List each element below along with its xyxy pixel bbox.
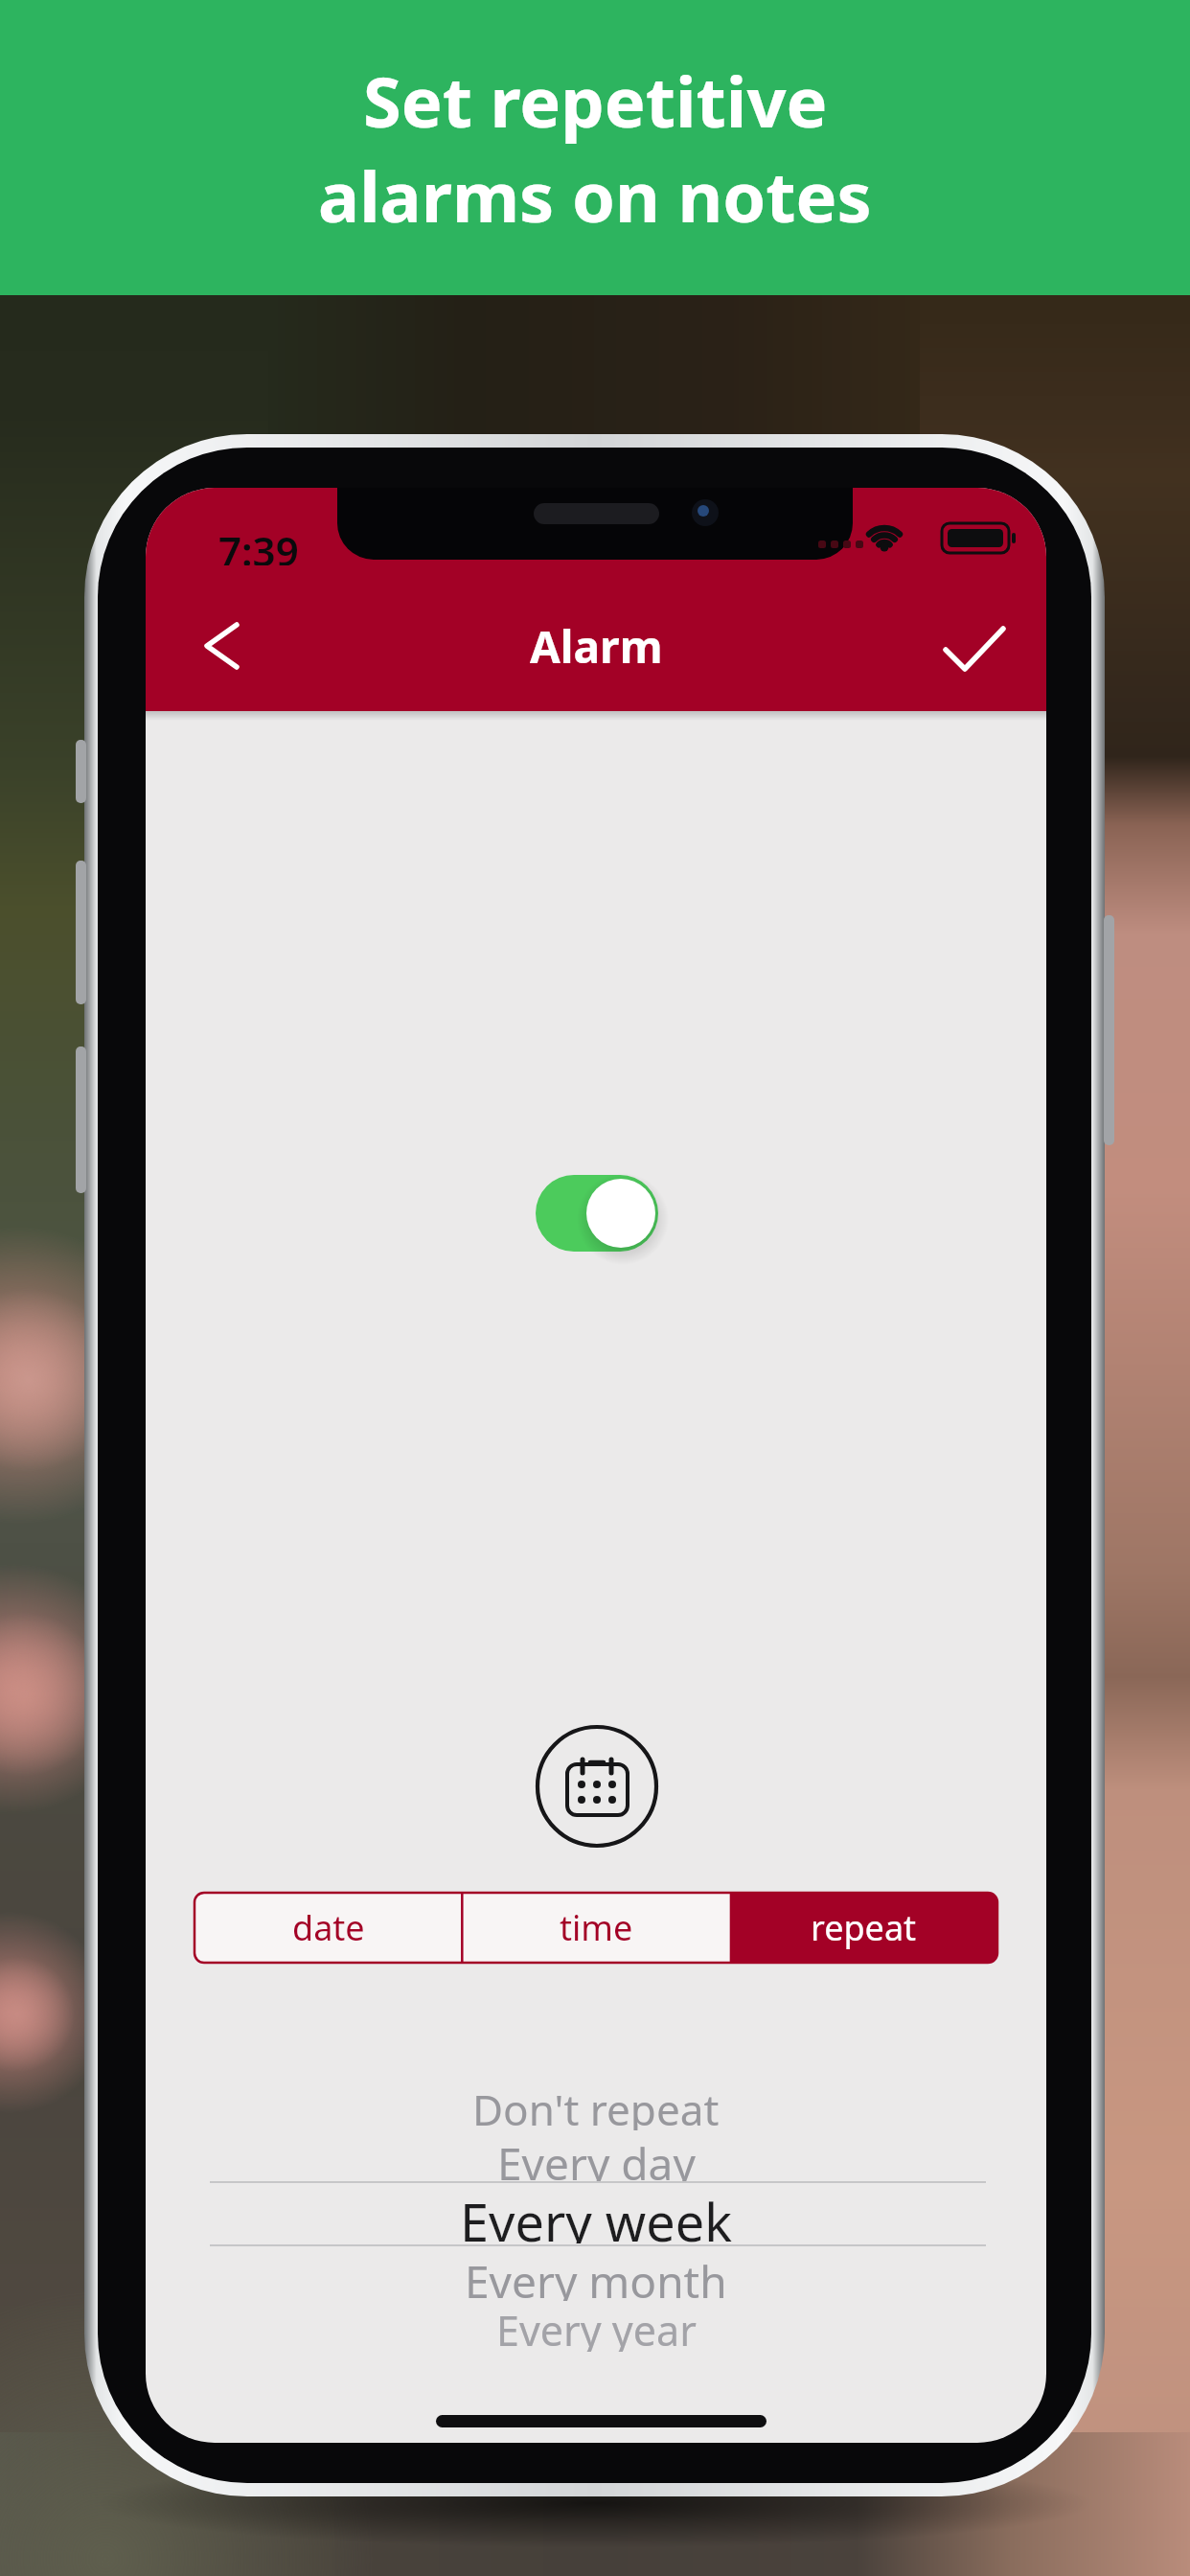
button[interactable] [917, 608, 1022, 684]
staticText: Every year [496, 2302, 697, 2352]
staticText: Every day [497, 2133, 696, 2183]
button[interactable]: time [462, 1893, 730, 1963]
staticText: Every week [460, 2186, 732, 2243]
staticText: Don't repeat [472, 2081, 720, 2130]
staticText: 7:39 [218, 523, 299, 565]
button[interactable] [535, 1724, 659, 1849]
staticText: time [560, 1904, 633, 1951]
staticText: date [292, 1904, 365, 1951]
staticText: Alarm [530, 616, 663, 677]
button[interactable] [177, 608, 265, 684]
button[interactable]: Every month [146, 2251, 1046, 2301]
button[interactable]: Every week [146, 2186, 1046, 2243]
staticText: alarms on notes [318, 149, 872, 241]
button[interactable]: Every year [146, 2302, 1046, 2352]
staticText: repeat [811, 1904, 917, 1951]
button[interactable]: repeat [730, 1893, 997, 1963]
staticText: Every month [465, 2251, 727, 2301]
button[interactable] [536, 1175, 658, 1252]
button[interactable]: Every day [146, 2133, 1046, 2183]
staticText: Set repetitive [363, 54, 828, 146]
button[interactable]: date [195, 1893, 462, 1963]
button[interactable]: Don't repeat [146, 2081, 1046, 2130]
